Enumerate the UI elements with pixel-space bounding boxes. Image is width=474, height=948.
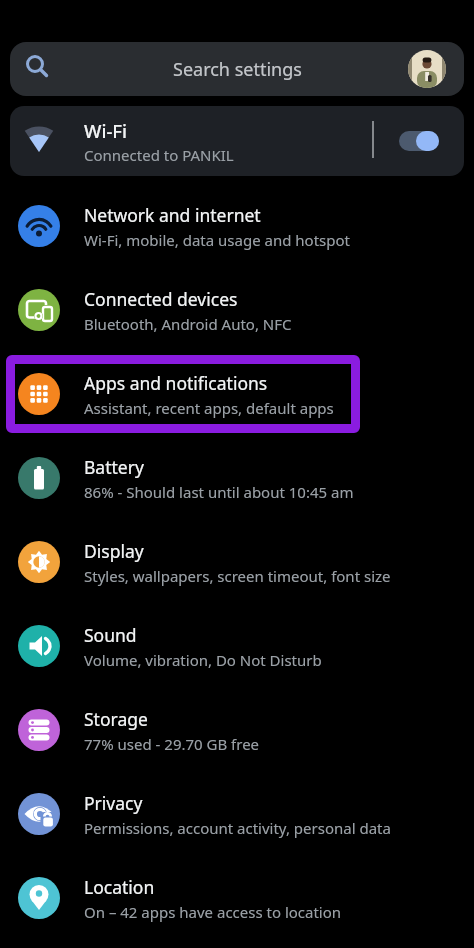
- staticText: Storage: [84, 707, 148, 731]
- staticText: Apps and notifications: [84, 371, 268, 395]
- button[interactable]: [399, 131, 439, 151]
- staticText: On – 42 apps have access to location: [84, 902, 342, 922]
- staticText: 86% - Should last until about 10:45 am: [84, 482, 354, 502]
- button[interactable]: Search settings: [10, 42, 464, 96]
- staticText: Connected devices: [84, 287, 238, 311]
- button[interactable]: Sound: [0, 604, 474, 688]
- button[interactable]: Location: [0, 856, 474, 940]
- button[interactable]: Network and internet: [0, 184, 474, 268]
- staticText: Wi-Fi, mobile, data usage and hotspot: [84, 230, 350, 250]
- staticText: Permissions, account activity, personal …: [84, 818, 391, 838]
- button[interactable]: [408, 50, 446, 88]
- staticText: Battery: [84, 455, 144, 479]
- button[interactable]: Connected devices: [0, 268, 474, 352]
- staticText: Connected to PANKIL: [84, 145, 234, 165]
- button[interactable]: Apps and notifications: [0, 352, 474, 436]
- staticText: Location: [84, 875, 155, 899]
- staticText: Wi-Fi: [84, 118, 128, 143]
- staticText: Bluetooth, Android Auto, NFC: [84, 314, 292, 334]
- button[interactable]: Battery: [0, 436, 474, 520]
- staticText: 77% used - 29.70 GB free: [84, 734, 260, 754]
- staticText: Network and internet: [84, 203, 261, 227]
- staticText: Search settings: [173, 57, 302, 82]
- button[interactable]: Privacy: [0, 772, 474, 856]
- button[interactable]: Wi-Fi: [10, 106, 464, 176]
- button[interactable]: Display: [0, 520, 474, 604]
- staticText: Privacy: [84, 791, 143, 815]
- button[interactable]: Storage: [0, 688, 474, 772]
- staticText: Display: [84, 539, 144, 563]
- staticText: Assistant, recent apps, default apps: [84, 398, 334, 418]
- staticText: Volume, vibration, Do Not Disturb: [84, 650, 322, 670]
- staticText: Sound: [84, 623, 137, 647]
- staticText: Styles, wallpapers, screen timeout, font…: [84, 566, 391, 586]
